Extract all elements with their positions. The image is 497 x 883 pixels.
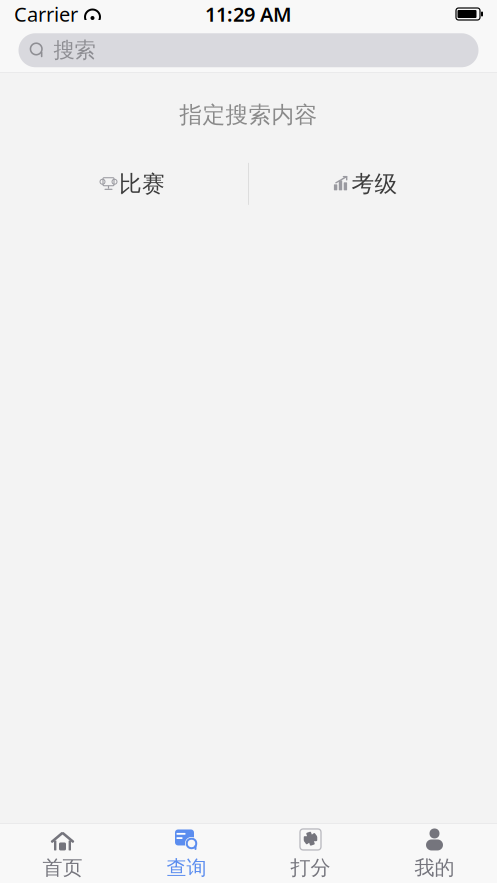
- button[interactable]: 查询: [124, 824, 248, 883]
- staticText: 查询: [166, 855, 206, 880]
- staticText: 我的: [414, 855, 454, 880]
- staticText: 打分: [290, 855, 330, 880]
- staticText: 比赛: [119, 170, 165, 198]
- staticText: Carrier: [14, 1, 78, 27]
- staticText: 搜索: [53, 37, 95, 63]
- button[interactable]: 我的: [372, 824, 496, 883]
- button[interactable]: 考级: [249, 156, 480, 212]
- staticText: 指定搜索内容: [179, 101, 317, 129]
- staticText: 考级: [351, 170, 397, 198]
- button[interactable]: 搜索: [18, 33, 478, 67]
- staticText: 11:29 AM: [205, 1, 292, 27]
- button[interactable]: 打分: [248, 824, 372, 883]
- button[interactable]: 比赛: [17, 156, 248, 212]
- staticText: 首页: [42, 855, 82, 880]
- button[interactable]: 首页: [0, 824, 124, 883]
